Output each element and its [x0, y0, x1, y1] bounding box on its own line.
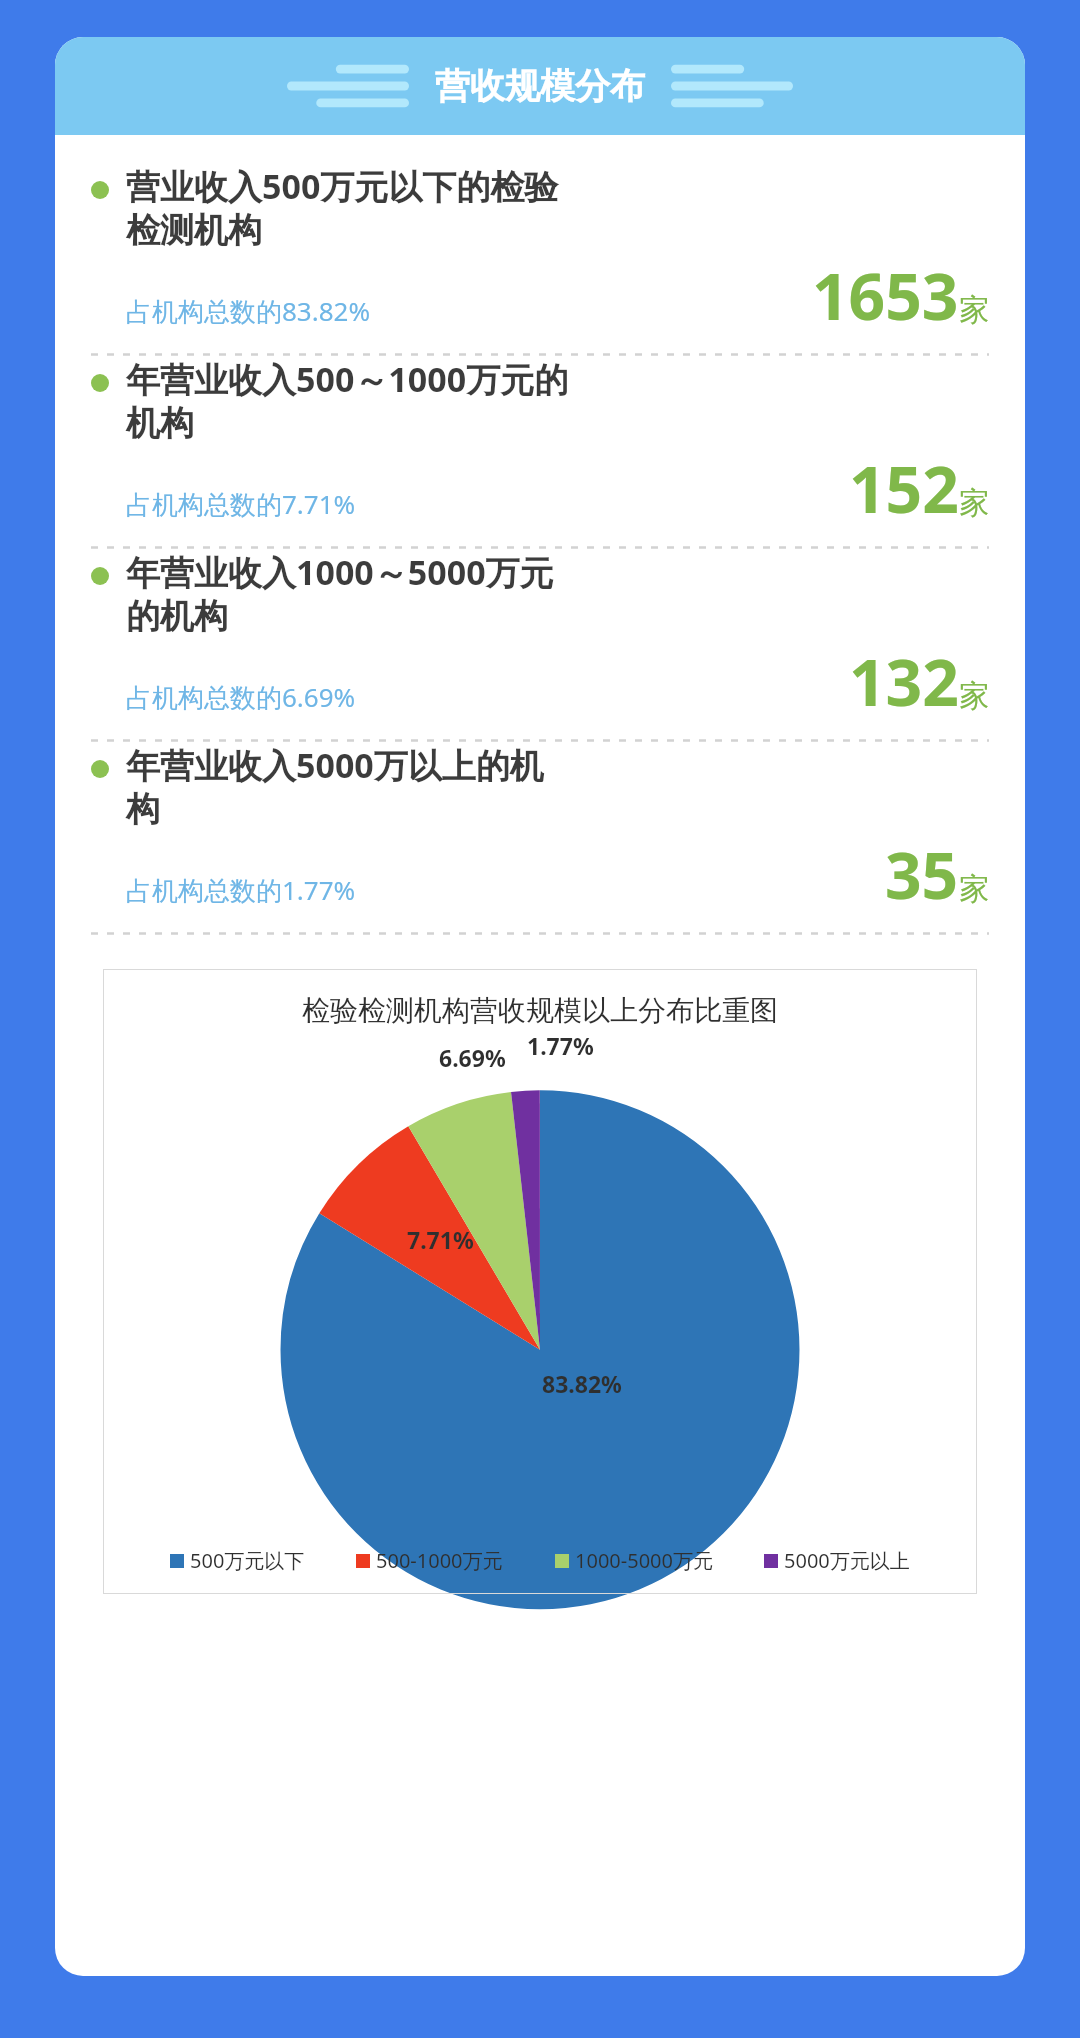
- staticText: 家: [959, 870, 989, 908]
- staticText: 检验检测机构营收规模以上分布比重图: [103, 993, 977, 1028]
- staticText: 500-1000万元: [376, 1547, 503, 1574]
- button[interactable]: 500-1000万元: [356, 1547, 503, 1574]
- staticText: 132: [849, 638, 959, 725]
- staticText: 1.77%: [527, 1030, 594, 1061]
- staticText: 年营业收入5000万以上的机: [126, 742, 544, 788]
- staticText: 5000万元以上: [784, 1547, 910, 1574]
- staticText: 83.82%: [542, 1368, 622, 1399]
- staticText: 年营业收入1000～5000万元: [126, 549, 554, 595]
- staticText: 35: [885, 831, 959, 918]
- staticText: 占机构总数的1.77%: [126, 872, 356, 908]
- button[interactable]: 检验检测机构营收规模以上分布比重图: [103, 969, 977, 1594]
- button[interactable]: 500万元以下: [170, 1547, 305, 1574]
- button[interactable]: 营业收入500万元以下的检验: [55, 163, 1025, 353]
- button[interactable]: 年营业收入1000～5000万元: [55, 549, 1025, 739]
- staticText: 152: [849, 445, 959, 532]
- staticText: 营业收入500万元以下的检验: [126, 163, 559, 209]
- staticText: 占机构总数的83.82%: [126, 293, 371, 329]
- staticText: 1000-5000万元: [575, 1547, 713, 1574]
- staticText: 构: [126, 788, 160, 831]
- staticText: 占机构总数的6.69%: [126, 679, 356, 715]
- staticText: 年营业收入500～1000万元的: [126, 356, 569, 402]
- staticText: 机构: [126, 402, 194, 445]
- staticText: 500万元以下: [190, 1547, 305, 1574]
- button[interactable]: 年营业收入5000万以上的机: [55, 742, 1025, 932]
- staticText: 占机构总数的7.71%: [126, 486, 356, 522]
- staticText: 检测机构: [126, 209, 262, 252]
- staticText: 营收规模分布: [435, 64, 645, 108]
- button[interactable]: 5000万元以上: [764, 1547, 910, 1574]
- staticText: 6.69%: [439, 1042, 506, 1073]
- button[interactable]: 1000-5000万元: [555, 1547, 713, 1574]
- staticText: 的机构: [126, 595, 228, 638]
- staticText: 1653: [812, 252, 959, 339]
- staticText: 家: [959, 677, 989, 715]
- staticText: 7.71%: [407, 1224, 474, 1255]
- staticText: 家: [959, 291, 989, 329]
- staticText: 家: [959, 484, 989, 522]
- button[interactable]: 年营业收入500～1000万元的: [55, 356, 1025, 546]
